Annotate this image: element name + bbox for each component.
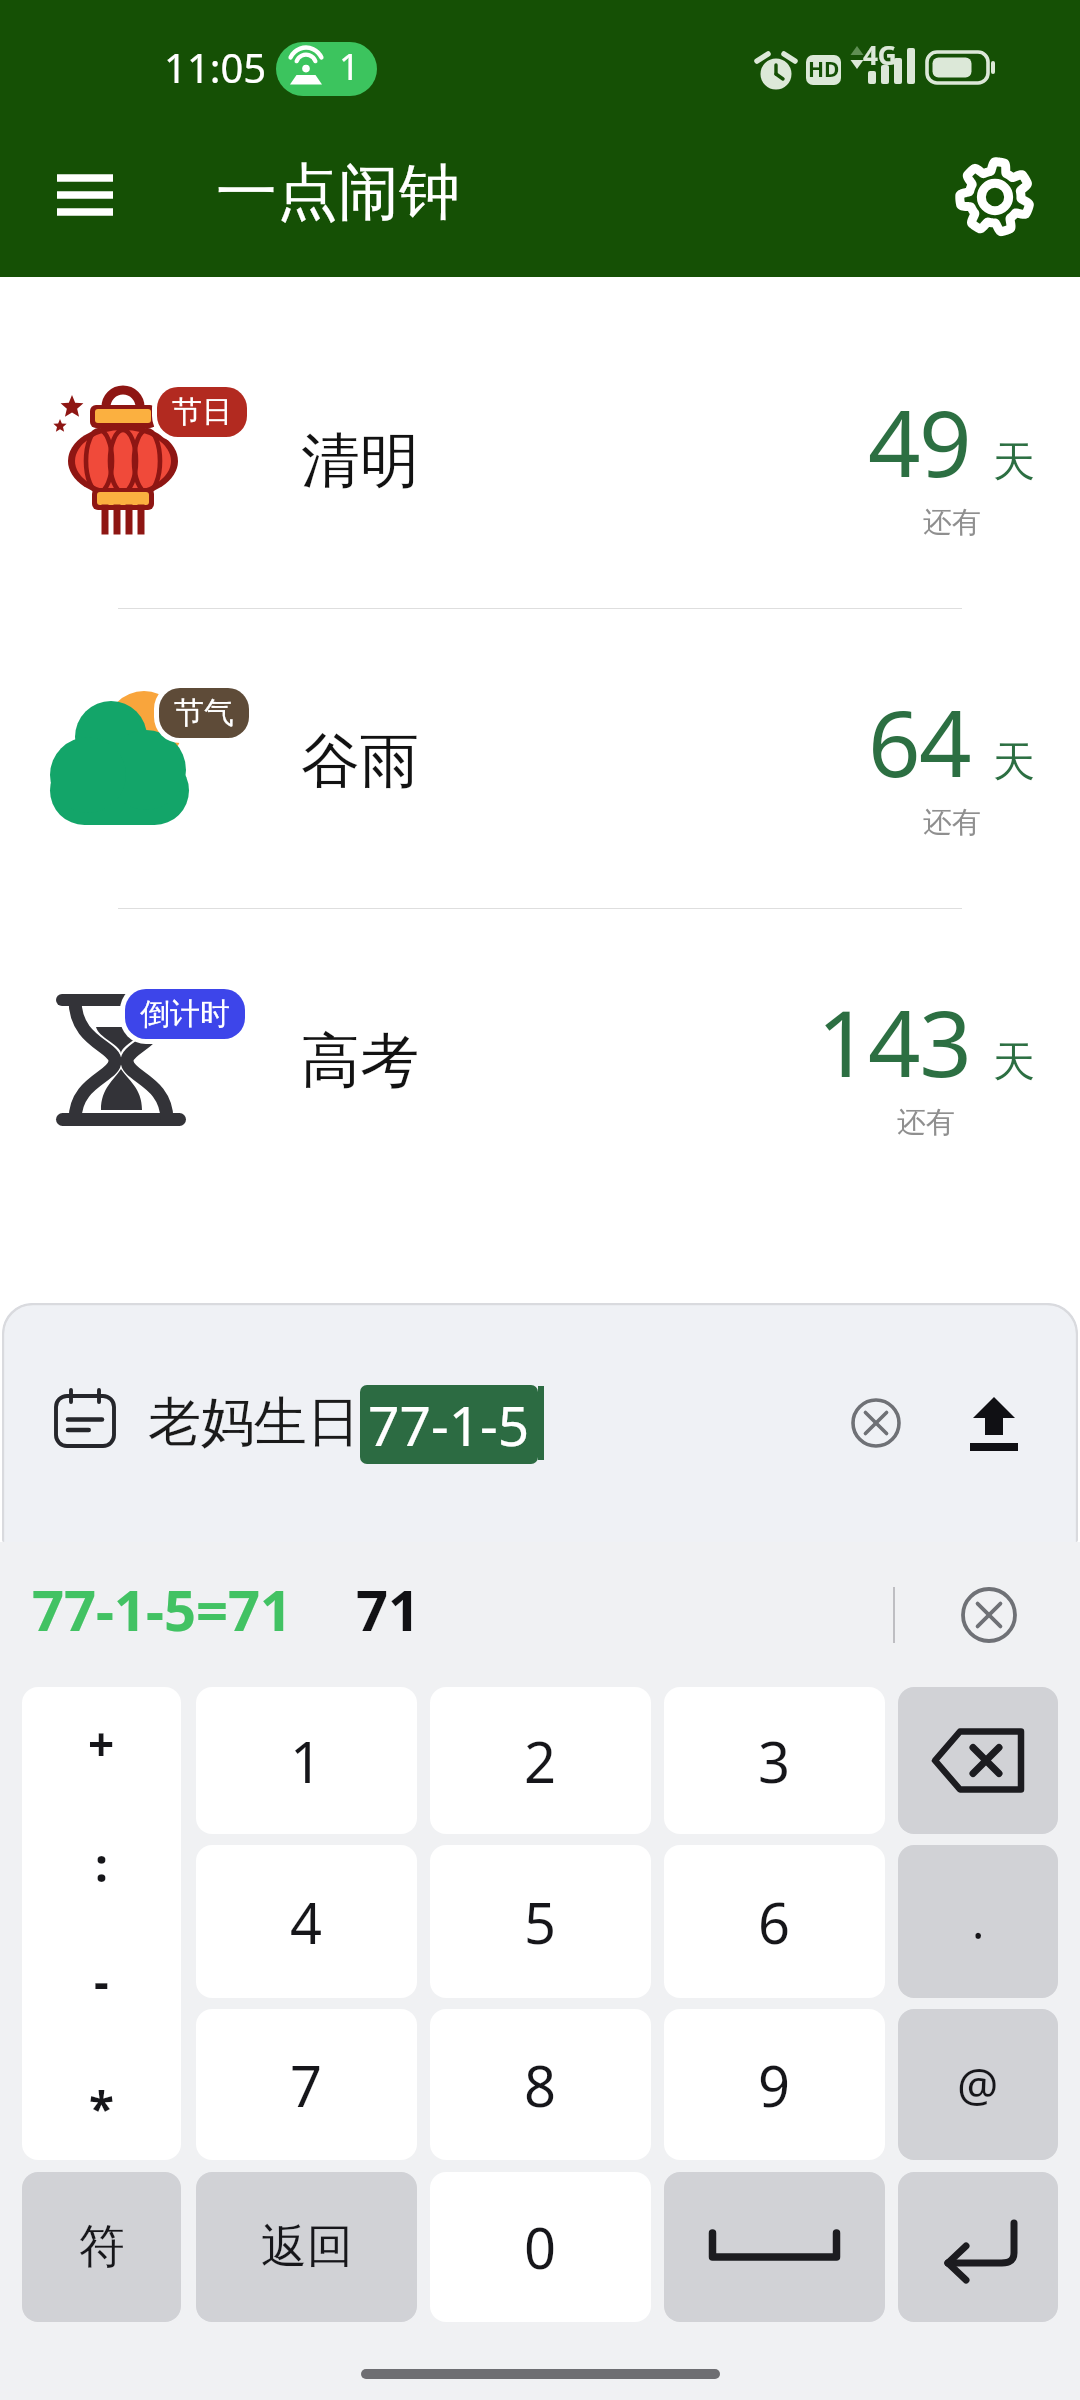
button[interactable]: 5 [430, 1845, 651, 1998]
staticText: 还有 [923, 504, 981, 541]
button[interactable]: 2 [430, 1687, 651, 1834]
staticText: : [95, 1833, 108, 1896]
button[interactable]: 符 [22, 2172, 181, 2322]
staticText: 49 [868, 379, 971, 504]
button[interactable]: @ [898, 2009, 1058, 2160]
button[interactable]: Close suggestions [952, 1578, 1026, 1652]
staticText: 还有 [897, 1104, 955, 1141]
button[interactable]: 6 [664, 1845, 885, 1998]
staticText: HD [808, 55, 840, 84]
button[interactable]: 返回 [196, 2172, 417, 2322]
staticText: 节日 [172, 393, 232, 431]
staticText: 倒计时 [140, 995, 230, 1033]
staticText: 1 [290, 1723, 323, 1799]
button[interactable]: Submit [958, 1387, 1030, 1459]
staticText: 天 [993, 1036, 1035, 1089]
button[interactable]: Settings [951, 153, 1039, 241]
staticText: 老妈生日 [148, 1389, 360, 1456]
staticText: - [94, 1950, 109, 2013]
button[interactable]: 4 [196, 1845, 417, 1998]
staticText: 返回 [261, 2218, 353, 2276]
button[interactable]: 8 [430, 2009, 651, 2160]
button[interactable]: 77-1-5=71 [32, 1571, 293, 1647]
staticText: 6 [758, 1884, 791, 1960]
button[interactable]: Space [664, 2172, 885, 2322]
button[interactable]: 71 [356, 1571, 421, 1647]
button[interactable]: 节日 [0, 309, 1080, 608]
staticText: 5 [524, 1884, 557, 1960]
staticText: 清明 [301, 424, 419, 498]
staticText: 4G [863, 37, 897, 72]
staticText: + [88, 1712, 115, 1775]
button[interactable]: 9 [664, 2009, 885, 2160]
staticText: 天 [993, 736, 1035, 789]
staticText: 9 [758, 2047, 791, 2123]
button[interactable]: Backspace [898, 1687, 1058, 1834]
button[interactable]: Clear text [842, 1389, 910, 1457]
staticText: 1 [339, 42, 360, 91]
staticText: 节气 [174, 694, 234, 732]
staticText: 还有 [923, 804, 981, 841]
staticText: . [972, 1890, 985, 1953]
staticText: 64 [868, 679, 971, 804]
staticText: 高考 [301, 1024, 419, 1098]
staticText: 8 [524, 2047, 557, 2123]
button[interactable]: 7 [196, 2009, 417, 2160]
staticText: 3 [758, 1723, 791, 1799]
button[interactable]: 节气 [0, 609, 1080, 908]
staticText: 一点闹钟 [216, 154, 460, 231]
button[interactable]: 3 [664, 1687, 885, 1834]
button[interactable]: 1 [196, 1687, 417, 1834]
staticText: 4 [290, 1884, 323, 1960]
staticText: * [89, 2077, 114, 2140]
staticText: 天 [993, 436, 1035, 489]
button[interactable]: 倒计时 [0, 909, 1080, 1208]
button[interactable]: Menu [40, 155, 130, 245]
button[interactable]: . [898, 1845, 1058, 1998]
button[interactable]: 0 [430, 2172, 651, 2322]
staticText: 2 [524, 1723, 557, 1799]
staticText: 谷雨 [301, 724, 419, 798]
staticText: 0 [524, 2209, 557, 2285]
button[interactable]: + [22, 1687, 181, 2160]
staticText: 77-1-5 [368, 1387, 530, 1462]
staticText: @ [957, 2053, 999, 2116]
staticText: 143 [817, 979, 971, 1104]
staticText: 11:05 [164, 40, 267, 94]
button[interactable]: Enter [898, 2172, 1058, 2322]
staticText: 7 [290, 2047, 323, 2123]
staticText: 符 [79, 2218, 125, 2276]
